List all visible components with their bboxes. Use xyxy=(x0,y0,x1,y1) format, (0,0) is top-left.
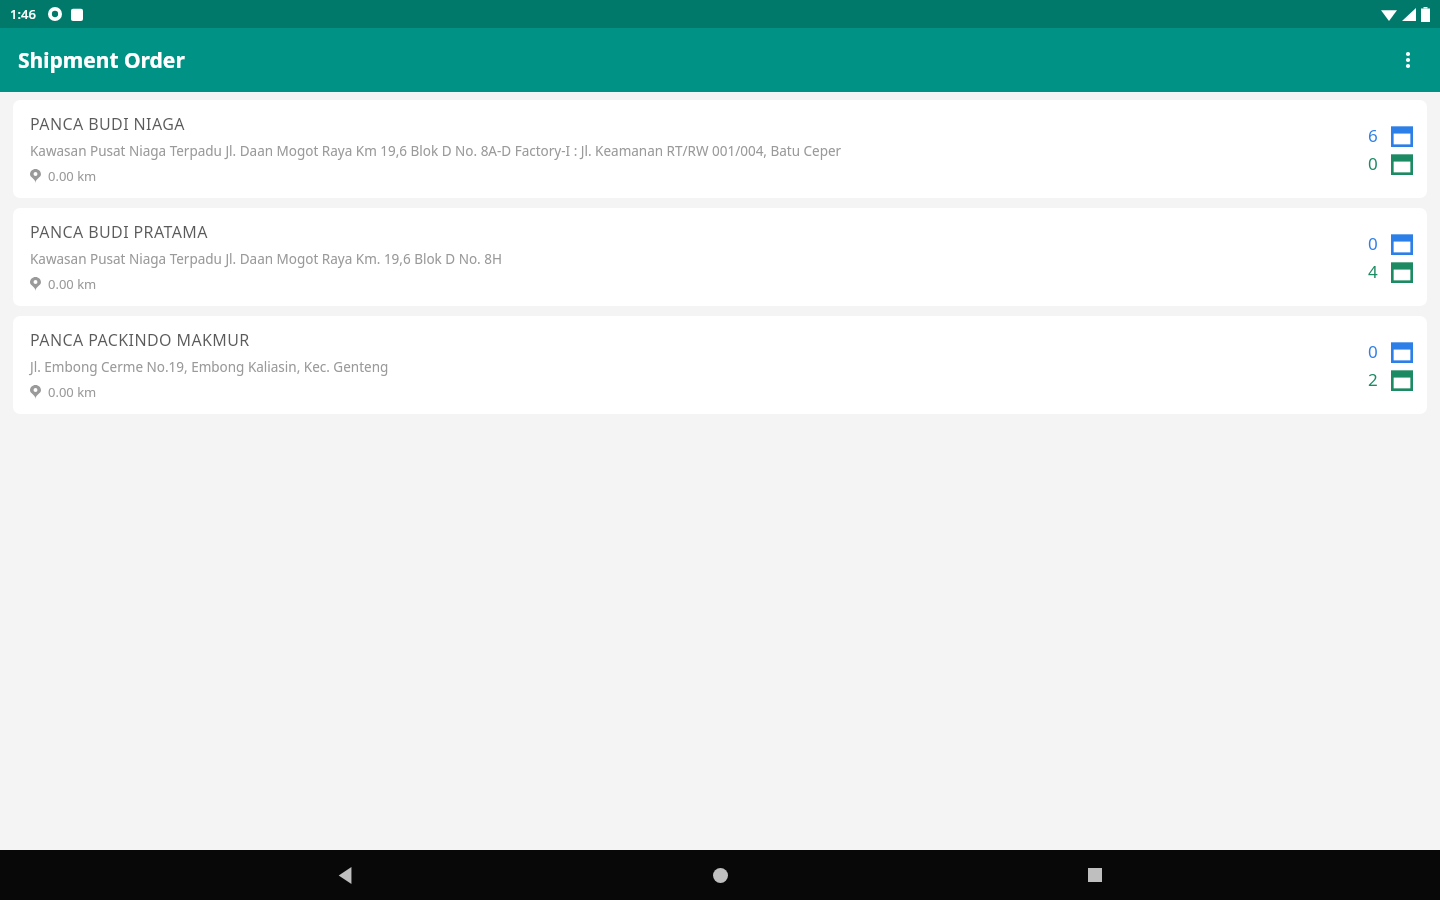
staticText: 0 xyxy=(1368,152,1378,175)
button[interactable]: Order count 0 xyxy=(1352,340,1413,363)
staticText: PANCA PACKINDO MAKMUR xyxy=(30,329,250,351)
staticText: 0.00 km xyxy=(48,167,97,185)
staticText: Shipment Order xyxy=(18,46,185,75)
staticText: 0 xyxy=(1368,340,1378,363)
button[interactable]: Back xyxy=(315,850,375,900)
staticText: 0.00 km xyxy=(48,383,97,401)
button[interactable]: Order count 0 xyxy=(1352,152,1413,175)
staticText: Kawasan Pusat Niaga Terpadu Jl. Daan Mog… xyxy=(30,142,842,160)
button[interactable]: Home xyxy=(690,850,750,900)
staticText: 6 xyxy=(1368,124,1378,147)
staticText: 1:46 xyxy=(10,5,36,23)
staticText: 0 xyxy=(1368,232,1378,255)
button[interactable]: Order count 0 xyxy=(1352,232,1413,255)
staticText: 4 xyxy=(1368,260,1378,283)
staticText: 0.00 km xyxy=(48,275,97,293)
button[interactable]: PANCA BUDI PRATAMA xyxy=(13,208,1427,306)
button[interactable]: Order count 6 xyxy=(1352,124,1413,147)
staticText: Kawasan Pusat Niaga Terpadu Jl. Daan Mog… xyxy=(30,250,502,268)
staticText: Jl. Embong Cerme No.19, Embong Kaliasin,… xyxy=(30,358,389,376)
button[interactable]: More options xyxy=(1386,38,1430,82)
button[interactable]: Order count 4 xyxy=(1352,260,1413,283)
button[interactable]: PANCA BUDI NIAGA xyxy=(13,100,1427,198)
button[interactable]: PANCA PACKINDO MAKMUR xyxy=(13,316,1427,414)
staticText: PANCA BUDI PRATAMA xyxy=(30,221,208,243)
button[interactable]: Recent apps xyxy=(1065,850,1125,900)
button[interactable]: Order count 2 xyxy=(1352,368,1413,391)
staticText: PANCA BUDI NIAGA xyxy=(30,113,185,135)
staticText: 2 xyxy=(1368,368,1378,391)
